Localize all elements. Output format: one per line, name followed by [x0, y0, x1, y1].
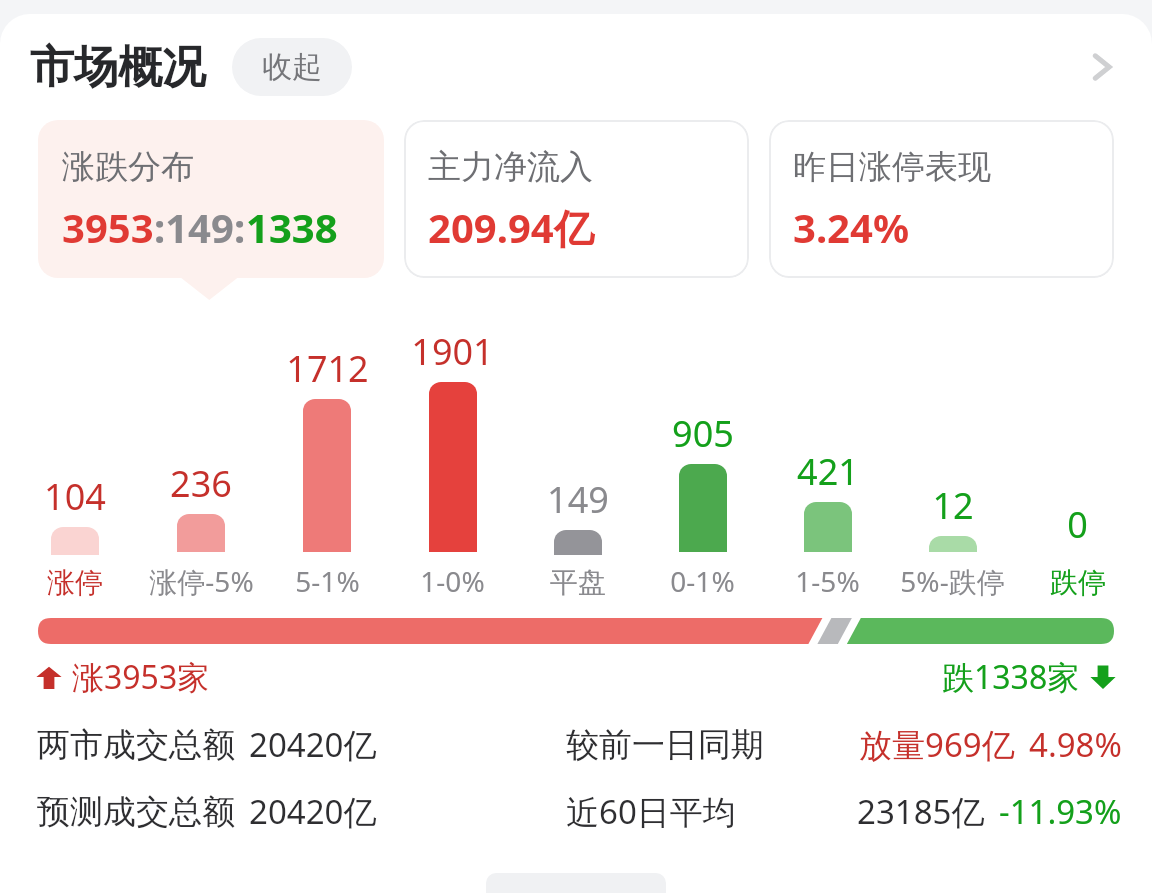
- staticText: 市场概况: [30, 40, 206, 95]
- staticText: 涨停: [47, 565, 103, 600]
- button[interactable]: 昨日涨停表现: [769, 120, 1114, 278]
- staticText: 1338: [246, 200, 338, 254]
- staticText: 5-1%: [295, 562, 360, 600]
- button[interactable]: 涨跌分布: [38, 120, 384, 278]
- staticText: 1712: [286, 344, 369, 393]
- staticText: 1-0%: [420, 562, 485, 600]
- staticText: 较前一日同期: [566, 724, 764, 766]
- staticText: 0-1%: [670, 562, 735, 600]
- staticText: 5%-跌停: [900, 562, 1005, 600]
- staticText: :149:: [154, 200, 246, 254]
- staticText: -11.93%: [999, 789, 1122, 834]
- button[interactable]: 主力净流入: [404, 120, 749, 278]
- staticText: 236: [170, 459, 232, 508]
- staticText: 104: [44, 472, 106, 521]
- staticText: 涨停-5%: [149, 562, 254, 600]
- staticText: 主力净流入: [428, 146, 593, 188]
- staticText: 昨日涨停表现: [793, 146, 991, 188]
- staticText: 1-5%: [795, 562, 860, 600]
- staticText: 905: [672, 409, 734, 458]
- staticText: 预测成交总额: [37, 791, 235, 833]
- staticText: 放量969亿: [859, 722, 1015, 767]
- staticText: 12: [932, 481, 974, 530]
- staticText: 跌1338家: [942, 655, 1080, 699]
- staticText: 149: [547, 475, 609, 524]
- staticText: 两市成交总额: [37, 724, 235, 766]
- staticText: 1901: [411, 327, 494, 376]
- staticText: 跌停: [1050, 565, 1106, 600]
- staticText: 近60日平均: [566, 789, 736, 834]
- staticText: 收起: [262, 48, 322, 86]
- button[interactable]: 收起: [232, 38, 352, 96]
- staticText: 涨3953家: [72, 655, 210, 699]
- staticText: 20420亿: [249, 722, 377, 767]
- staticText: 421: [797, 447, 859, 496]
- staticText: 0: [1067, 500, 1088, 549]
- staticText: 涨跌分布: [62, 146, 194, 188]
- staticText: 20420亿: [249, 789, 377, 834]
- staticText: 4.98%: [1029, 722, 1122, 767]
- staticText: 3.24%: [793, 200, 909, 254]
- staticText: 23185亿: [857, 789, 985, 834]
- button[interactable]: More: [1074, 39, 1130, 95]
- staticText: 209.94亿: [428, 200, 594, 255]
- staticText: 平盘: [550, 565, 606, 600]
- staticText: 3953: [62, 200, 154, 254]
